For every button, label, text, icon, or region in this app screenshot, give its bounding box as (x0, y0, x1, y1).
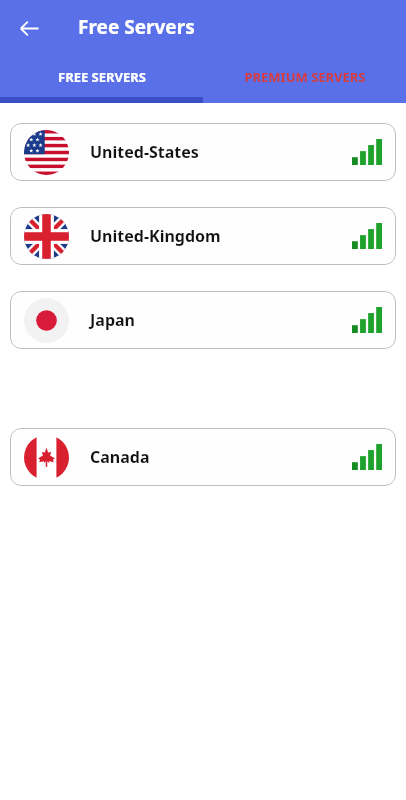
staticText: United-States (90, 141, 199, 163)
staticText: Japan (90, 309, 135, 331)
button[interactable]: Japan (10, 291, 396, 349)
staticText: PREMIUM SERVERS (244, 68, 366, 86)
button[interactable]: Canada (10, 428, 396, 486)
button[interactable]: Back (13, 12, 45, 44)
button[interactable]: United-States (10, 123, 396, 181)
staticText: Canada (90, 446, 150, 468)
button[interactable]: FREE SERVERS (0, 56, 203, 97)
button[interactable]: United-Kingdom (10, 207, 396, 265)
staticText: Free Servers (78, 14, 195, 40)
staticText: United-Kingdom (90, 225, 221, 247)
button[interactable]: PREMIUM SERVERS (203, 56, 406, 97)
staticText: FREE SERVERS (58, 68, 146, 86)
